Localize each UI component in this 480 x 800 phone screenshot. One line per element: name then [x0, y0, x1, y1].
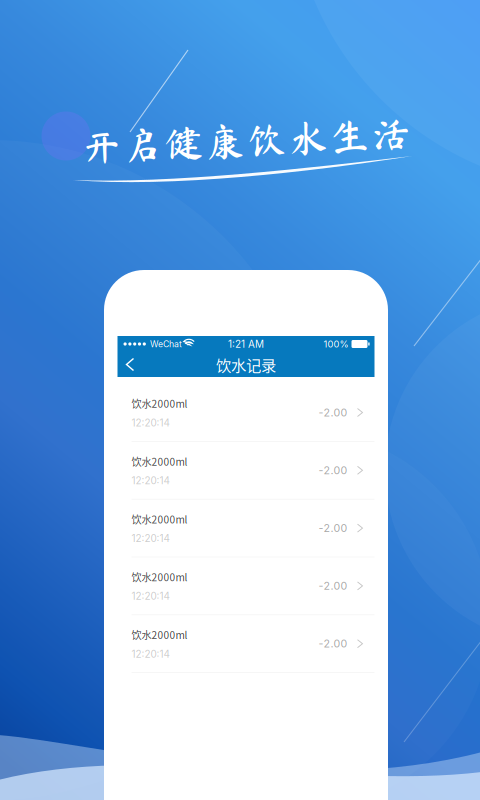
staticText: 饮水2000ml: [131, 512, 187, 526]
button[interactable]: 饮水2000ml: [117, 500, 374, 557]
staticText: -2.00: [318, 637, 347, 650]
staticText: 12:20:14: [131, 417, 169, 429]
staticText: 饮水2000ml: [131, 569, 187, 584]
staticText: 12:20:14: [131, 532, 169, 544]
button[interactable]: 饮水2000ml: [117, 557, 374, 615]
staticText: 饮水记录: [216, 353, 276, 376]
staticText: -2.00: [318, 522, 347, 534]
staticText: 饮水2000ml: [131, 396, 187, 411]
staticText: 12:20:14: [131, 475, 169, 487]
staticText: -2.00: [318, 579, 347, 592]
staticText: -2.00: [318, 406, 347, 419]
button[interactable]: Back: [117, 351, 142, 377]
staticText: 1:21 AM: [228, 338, 264, 350]
staticText: 饮水2000ml: [131, 627, 187, 642]
staticText: 饮水2000ml: [131, 454, 187, 469]
staticText: 100%: [323, 338, 348, 350]
button[interactable]: 饮水2000ml: [117, 615, 374, 673]
button[interactable]: 饮水2000ml: [117, 384, 374, 442]
staticText: 12:20:14: [131, 590, 169, 602]
staticText: WeChat: [150, 339, 182, 349]
staticText: 12:20:14: [131, 648, 169, 660]
button[interactable]: 饮水2000ml: [117, 442, 374, 500]
staticText: -2.00: [318, 464, 347, 477]
staticText: 开启健康饮水生活: [81, 121, 411, 159]
